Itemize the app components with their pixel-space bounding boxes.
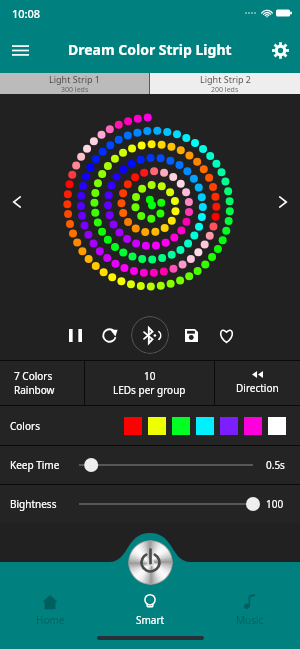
staticText: 10 (144, 369, 156, 383)
button[interactable]: 10 (85, 361, 214, 405)
button[interactable] (72, 453, 260, 477)
button[interactable]: Pause (59, 319, 91, 351)
button[interactable]: Previous (0, 185, 34, 219)
button[interactable] (72, 492, 260, 516)
staticText: Keep Time (10, 458, 72, 472)
button[interactable]: Menu (0, 30, 40, 70)
staticText: Home (36, 613, 65, 627)
staticText: Bightness (10, 497, 72, 511)
button[interactable]: Direction (215, 361, 300, 405)
staticText: 100 (266, 497, 300, 511)
button[interactable]: Favorite (210, 319, 242, 351)
button[interactable]: Power (128, 540, 173, 585)
staticText: 300 leds (61, 85, 89, 94)
staticText: 10:08 (12, 6, 41, 21)
staticText: LEDs per group (113, 383, 186, 397)
staticText: Dream Color Strip Light (68, 40, 232, 59)
staticText: Smart (136, 613, 165, 627)
staticText: 7 Colors (14, 369, 53, 383)
button[interactable]: Bluetooth (131, 316, 169, 354)
button[interactable]: Smart (100, 594, 200, 627)
staticText: Light Strip 1 (49, 73, 100, 85)
staticText: Music (236, 613, 264, 627)
staticText: Light Strip 2 (200, 73, 251, 85)
button[interactable]: Light Strip 1 (0, 73, 149, 94)
button[interactable]: Music (200, 594, 300, 627)
staticText: Rainbow (14, 383, 55, 397)
staticText: Colors (10, 419, 40, 433)
button[interactable]: 7 Colors (0, 361, 84, 405)
button[interactable]: Save (175, 319, 207, 351)
button[interactable]: Home (0, 594, 100, 627)
button[interactable]: Next (266, 185, 300, 219)
staticText: Direction (236, 381, 279, 395)
button[interactable]: Settings (260, 30, 300, 70)
staticText: 200 leds (211, 85, 239, 94)
button[interactable]: Refresh (93, 319, 125, 351)
button[interactable]: Light Strip 2 (150, 73, 300, 94)
staticText: 0.5s (266, 458, 300, 472)
